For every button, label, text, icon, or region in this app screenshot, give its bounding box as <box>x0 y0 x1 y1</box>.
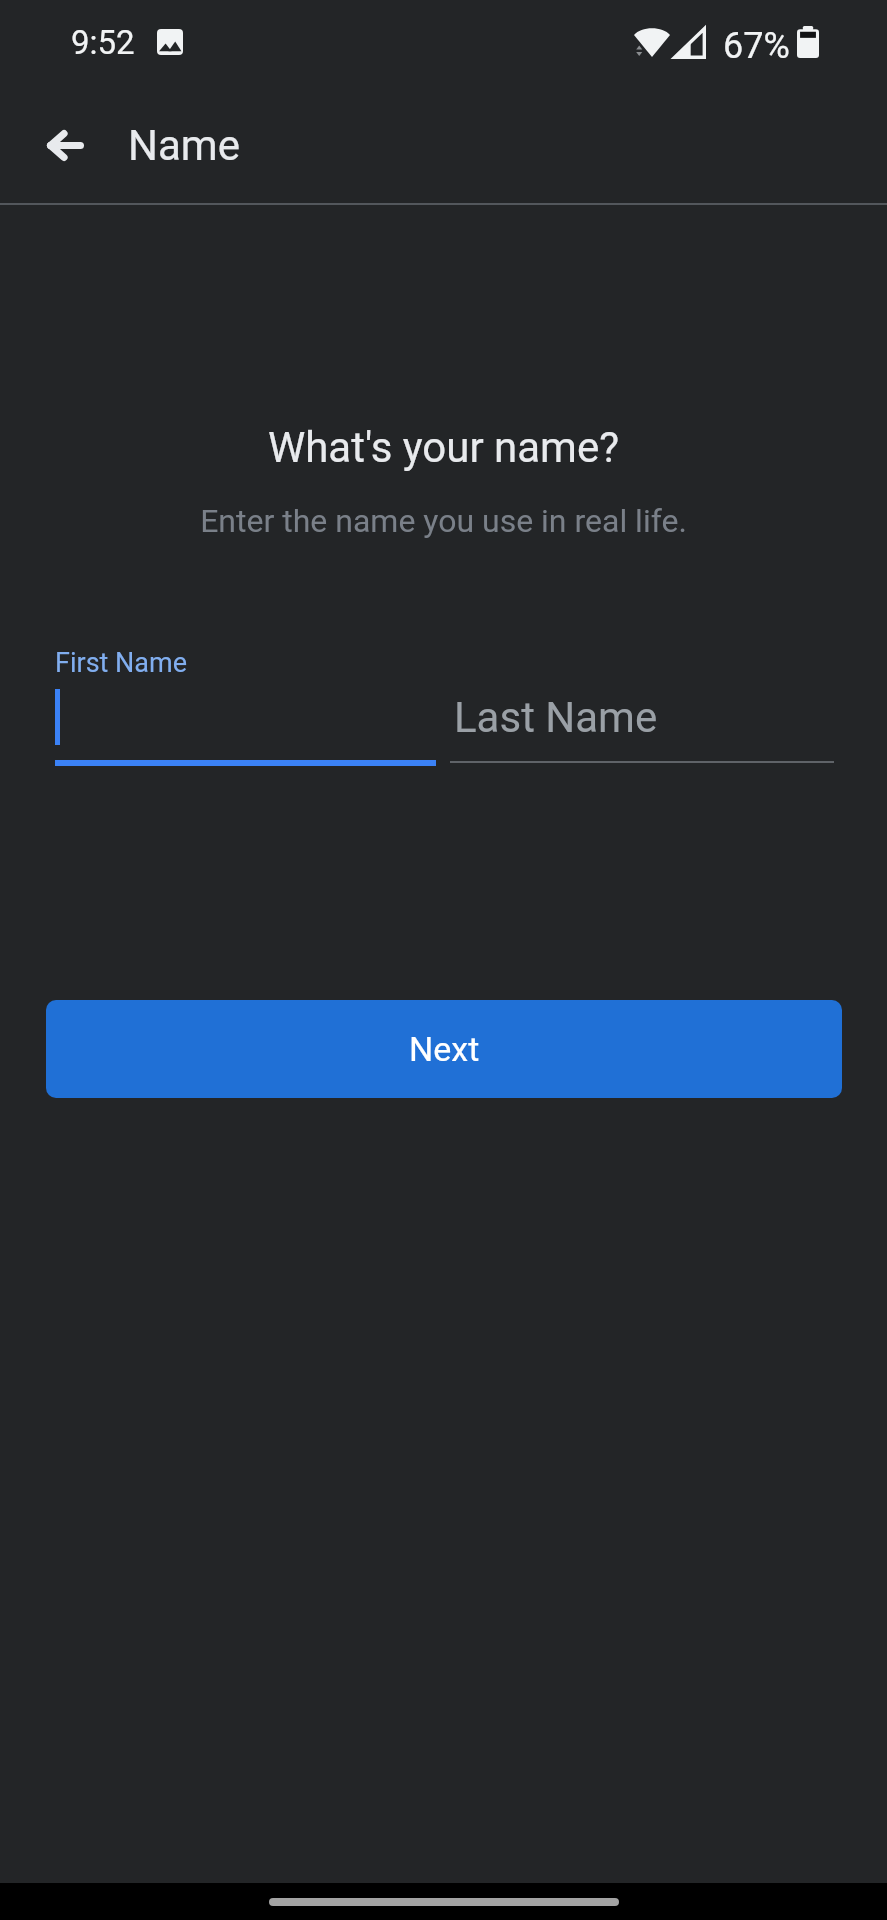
staticText: What's your name? <box>0 423 887 472</box>
staticText: 9:52 <box>71 23 135 62</box>
button[interactable]: Next <box>46 1000 842 1098</box>
button[interactable]: Back <box>27 107 104 184</box>
staticText: Next <box>409 1029 480 1069</box>
staticText: Name <box>128 121 240 170</box>
button[interactable]: Last Name <box>450 640 834 770</box>
staticText: 67% <box>723 25 790 67</box>
staticText: Last Name <box>454 693 658 742</box>
button[interactable]: First Name <box>55 640 436 770</box>
staticText: First Name <box>55 647 188 679</box>
staticText: Enter the name you use in real life. <box>0 502 887 540</box>
